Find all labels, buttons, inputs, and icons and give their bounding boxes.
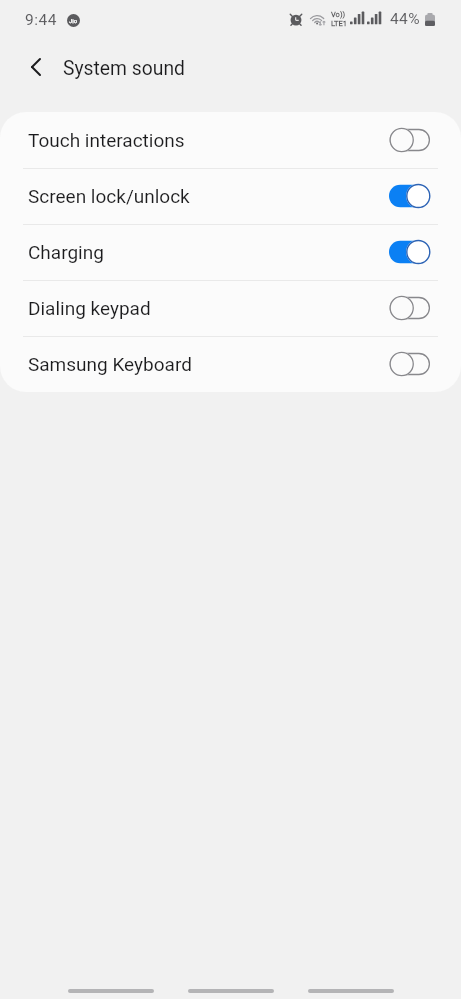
staticText: 9:44: [25, 11, 57, 29]
button[interactable]: Off: [389, 351, 431, 377]
staticText: LTE1: [331, 19, 347, 28]
button[interactable]: On: [389, 239, 431, 265]
staticText: Dialing keypad: [28, 297, 389, 319]
staticText: Touch interactions: [28, 129, 389, 151]
staticText: 44%: [390, 10, 420, 28]
button[interactable]: Recents: [68, 989, 154, 993]
button[interactable]: Off: [389, 295, 431, 321]
button[interactable]: Touch interactions: [0, 112, 461, 168]
staticText: Samsung Keyboard: [28, 353, 389, 375]
button[interactable]: Off: [389, 127, 431, 153]
button[interactable]: Navigate up: [12, 42, 60, 90]
button[interactable]: On: [389, 183, 431, 209]
button[interactable]: Home: [188, 989, 274, 993]
button[interactable]: Screen lock/unlock: [0, 168, 461, 224]
staticText: Jio: [69, 17, 78, 24]
button[interactable]: Samsung Keyboard: [0, 336, 461, 392]
button[interactable]: Back: [308, 989, 394, 993]
staticText: Charging: [28, 241, 389, 263]
staticText: System sound: [63, 57, 185, 80]
button[interactable]: Charging: [0, 224, 461, 280]
staticText: Vo)): [331, 10, 346, 19]
button[interactable]: Dialing keypad: [0, 280, 461, 336]
staticText: Screen lock/unlock: [28, 185, 389, 207]
